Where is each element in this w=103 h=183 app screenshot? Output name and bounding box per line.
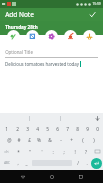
button[interactable]: Home bbox=[45, 170, 58, 183]
button[interactable]: Category 2 bbox=[26, 30, 39, 43]
staticText: ' bbox=[41, 149, 43, 155]
button[interactable]: 1 bbox=[1, 124, 12, 135]
button[interactable]: 7 bbox=[62, 124, 72, 135]
button[interactable]: 4 bbox=[32, 124, 42, 135]
button[interactable]: " bbox=[24, 146, 36, 157]
staticText: : bbox=[52, 149, 54, 155]
staticText: Delicious tomatoes harvested today bbox=[5, 61, 79, 67]
staticText: 3 bbox=[26, 126, 29, 133]
button[interactable]: % bbox=[34, 135, 44, 146]
button[interactable]: : bbox=[47, 146, 58, 157]
button[interactable]: - bbox=[55, 135, 66, 146]
button[interactable]: 6 bbox=[52, 124, 62, 135]
button[interactable]: ( bbox=[77, 135, 88, 146]
staticText: - bbox=[60, 137, 62, 144]
button[interactable]: Backspace bbox=[91, 146, 103, 157]
button[interactable]: Save note bbox=[87, 9, 98, 20]
staticText: 9 bbox=[86, 126, 89, 133]
staticText: % bbox=[37, 137, 41, 144]
button[interactable]: ' bbox=[36, 146, 47, 157]
button[interactable]: + bbox=[66, 135, 77, 146]
staticText: 2 bbox=[16, 126, 19, 133]
staticText: . bbox=[86, 160, 88, 166]
button[interactable]: 2 bbox=[12, 124, 22, 135]
button[interactable]: Category 3 bbox=[45, 30, 58, 43]
button[interactable]: 8 bbox=[72, 124, 82, 135]
button[interactable]: 5 bbox=[42, 124, 52, 135]
button[interactable]: Voice input bbox=[91, 113, 103, 123]
staticText: ( bbox=[82, 137, 84, 144]
staticText: * bbox=[17, 149, 20, 155]
staticText: 5 bbox=[46, 126, 49, 133]
staticText: ! bbox=[74, 149, 76, 155]
staticText: Add Note bbox=[5, 10, 34, 19]
button[interactable]: Enter bbox=[91, 158, 102, 169]
button[interactable]: Delicious tomatoes harvested today bbox=[5, 61, 103, 67]
staticText: , bbox=[17, 160, 19, 166]
staticText: =\< bbox=[4, 150, 9, 154]
staticText: + bbox=[70, 137, 73, 144]
staticText: £ bbox=[28, 137, 31, 144]
button[interactable]: ) bbox=[88, 135, 99, 146]
staticText: ? bbox=[85, 149, 87, 155]
staticText: 7 bbox=[66, 126, 69, 133]
button[interactable]: Recent apps bbox=[74, 170, 87, 183]
staticText: ; bbox=[63, 149, 65, 155]
button[interactable]: _ bbox=[22, 157, 31, 169]
button[interactable]: Category 1 bbox=[7, 30, 20, 43]
button[interactable]: @ bbox=[4, 135, 14, 146]
staticText: & bbox=[48, 137, 52, 144]
staticText: 1 bbox=[5, 126, 8, 133]
button[interactable]: ; bbox=[58, 146, 69, 157]
button[interactable]: / bbox=[73, 157, 82, 169]
button[interactable]: 3 bbox=[22, 124, 32, 135]
staticText: ABC bbox=[4, 161, 10, 165]
staticText: 4 bbox=[36, 126, 39, 133]
staticText: Thursday 28th bbox=[5, 24, 38, 30]
staticText: @ bbox=[7, 137, 12, 144]
button[interactable]: Optional Title bbox=[5, 49, 98, 58]
staticText: " bbox=[29, 149, 31, 155]
button[interactable]: 9 bbox=[82, 124, 92, 135]
button[interactable]: . bbox=[82, 157, 91, 169]
staticText: 15:59 bbox=[92, 2, 101, 6]
staticText: # bbox=[17, 137, 21, 144]
button[interactable]: ! bbox=[69, 146, 80, 157]
button[interactable]: * bbox=[12, 146, 24, 157]
button[interactable]: ? bbox=[80, 146, 91, 157]
staticText: 6 bbox=[56, 126, 59, 133]
button[interactable]: ABC bbox=[1, 157, 13, 169]
button[interactable]: Category 4 bbox=[64, 30, 77, 43]
staticText: _ bbox=[25, 160, 28, 166]
staticText: 8 bbox=[76, 126, 79, 133]
button[interactable]: 0 bbox=[92, 124, 102, 135]
staticText: / bbox=[77, 160, 79, 166]
button[interactable]: , bbox=[13, 157, 22, 169]
staticText: Optional Title bbox=[5, 49, 33, 55]
button[interactable]: =\< bbox=[0, 146, 12, 157]
button[interactable]: Back bbox=[16, 170, 29, 183]
button[interactable]: £ bbox=[24, 135, 34, 146]
button[interactable]: & bbox=[44, 135, 55, 146]
staticText: 0 bbox=[96, 126, 99, 133]
button[interactable]: Category 5 bbox=[83, 30, 96, 43]
button[interactable]: # bbox=[14, 135, 24, 146]
staticText: ) bbox=[93, 137, 95, 144]
